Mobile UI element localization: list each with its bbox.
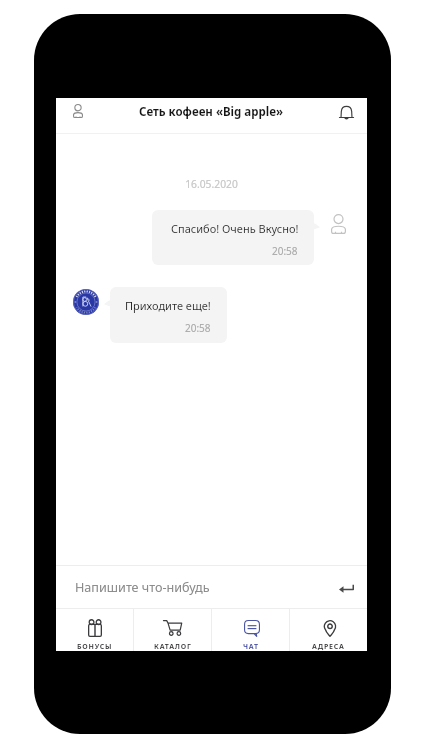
button[interactable]: Напишите что-нибудь [75, 579, 210, 596]
button[interactable]: Приходите еще! [110, 287, 227, 343]
staticText: 16.05.2020 [56, 177, 367, 191]
staticText: АДРЕСА [312, 642, 345, 652]
button[interactable]: ЧАТ [212, 609, 289, 651]
staticText: БОНУСЫ [77, 642, 113, 652]
staticText: 20:58 [272, 244, 298, 258]
button[interactable]: КАТАЛОГ [134, 609, 211, 651]
staticText: ЧАТ [243, 642, 259, 652]
staticText: КАТАЛОГ [154, 642, 192, 652]
staticText: Спасибо! Очень Вкусно! [171, 221, 299, 236]
button[interactable]: Profile [67, 100, 89, 122]
staticText: Приходите еще! [125, 298, 211, 313]
button[interactable]: БОНУСЫ [56, 609, 133, 651]
staticText: 20:58 [185, 321, 211, 335]
button[interactable]: АДРЕСА [290, 609, 367, 651]
button[interactable]: Спасибо! Очень Вкусно! [152, 210, 314, 265]
staticText: Сеть кофеен «Big apple» [139, 104, 284, 120]
button[interactable]: Send [336, 578, 356, 598]
button[interactable]: Notifications [335, 100, 357, 122]
